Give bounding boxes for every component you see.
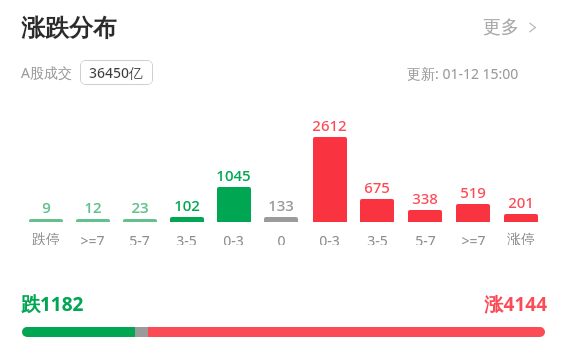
button[interactable]: 675	[353, 110, 401, 245]
button[interactable]: 102	[163, 110, 210, 245]
staticText: 201	[508, 192, 534, 212]
button[interactable]: 涨4144	[484, 291, 547, 317]
button[interactable]: 201	[497, 110, 545, 245]
staticText: 1045	[216, 165, 251, 185]
staticText: 519	[460, 182, 486, 202]
button[interactable]: 更多	[483, 16, 539, 39]
staticText: 跌停	[32, 231, 60, 245]
staticText: 36450亿	[89, 63, 144, 82]
staticText: 12	[84, 197, 102, 217]
staticText: 5-7	[129, 231, 150, 245]
staticText: 133	[268, 195, 294, 215]
button[interactable]: 12	[69, 110, 116, 245]
staticText: 23	[131, 197, 149, 217]
staticText: 9	[42, 197, 51, 217]
button[interactable]: 1045	[210, 110, 257, 245]
button[interactable]: 133	[257, 110, 305, 245]
button[interactable]: 23	[116, 110, 163, 245]
staticText: 0-3	[223, 231, 244, 245]
staticText: 更新: 01-12 15:00	[407, 64, 519, 83]
staticText: 3-5	[367, 231, 388, 245]
button[interactable]: 跌1182	[21, 291, 84, 317]
staticText: 更多	[483, 16, 519, 39]
button[interactable]	[22, 327, 545, 337]
staticText: 涨停	[507, 231, 535, 245]
button[interactable]: 338	[401, 110, 449, 245]
button[interactable]: 519	[449, 110, 497, 245]
staticText: 675	[364, 177, 390, 197]
staticText: 2612	[312, 115, 347, 135]
staticText: >=7	[80, 231, 105, 245]
staticText: 3-5	[176, 231, 197, 245]
staticText: 102	[174, 195, 200, 215]
other: More	[526, 21, 539, 34]
button[interactable]: 9	[22, 110, 69, 245]
staticText: 0	[277, 231, 286, 245]
staticText: 338	[412, 188, 438, 208]
staticText: 5-7	[415, 231, 436, 245]
button[interactable]: 2612	[305, 110, 353, 245]
button[interactable]: 36450亿	[80, 60, 153, 85]
button[interactable]: 涨跌分布	[21, 13, 117, 43]
staticText: A股成交	[21, 63, 72, 82]
staticText: 0-3	[319, 231, 340, 245]
staticText: >=7	[461, 231, 486, 245]
